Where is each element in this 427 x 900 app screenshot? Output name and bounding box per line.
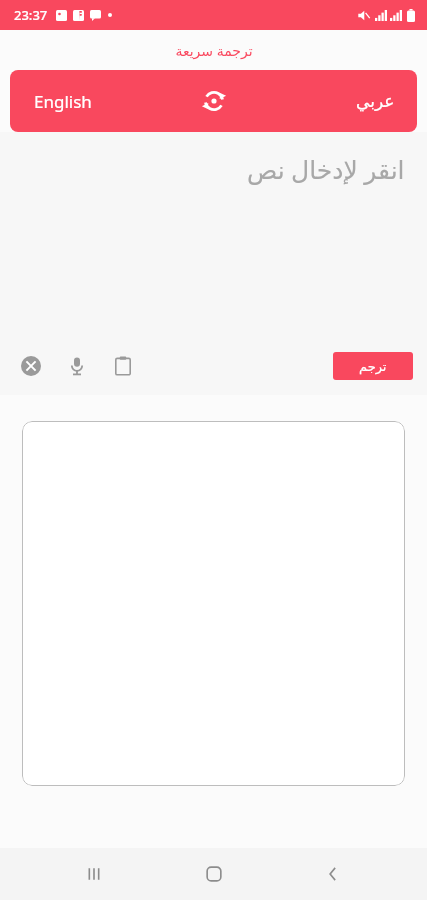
button[interactable]: Voice input bbox=[60, 349, 94, 383]
button[interactable]: ترجم bbox=[333, 352, 413, 380]
staticText: عربي bbox=[356, 91, 395, 111]
staticText: ترجم bbox=[359, 359, 387, 374]
button[interactable] bbox=[22, 421, 405, 786]
staticText: انقر لإدخال نص bbox=[247, 152, 405, 186]
button[interactable]: English bbox=[10, 70, 157, 132]
button[interactable]: Home bbox=[188, 848, 240, 900]
button[interactable]: Clear text bbox=[14, 349, 48, 383]
button[interactable]: Recent apps bbox=[68, 848, 120, 900]
button[interactable]: انقر لإدخال نص bbox=[0, 132, 427, 337]
staticText: ترجمة سريعة bbox=[175, 41, 253, 60]
button[interactable]: عربي bbox=[270, 70, 417, 132]
staticText: English bbox=[34, 90, 92, 113]
staticText: 23:37 bbox=[14, 6, 48, 24]
button[interactable]: Back bbox=[307, 848, 359, 900]
button[interactable]: Swap languages bbox=[190, 77, 238, 125]
button[interactable]: Paste from clipboard bbox=[106, 349, 140, 383]
